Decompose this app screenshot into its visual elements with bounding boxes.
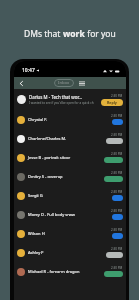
button[interactable]: Darius M - Tech that wor... bbox=[14, 89, 126, 110]
staticText: 2:30 PM bbox=[111, 247, 123, 251]
staticText: I wanted to see if you'd be open for a q… bbox=[29, 101, 94, 105]
button[interactable]: Wilson H bbox=[14, 224, 126, 243]
staticText: Wilson H bbox=[28, 231, 109, 236]
staticText: 2:30 PM bbox=[111, 209, 123, 213]
staticText: 10:47 bbox=[22, 67, 35, 74]
button[interactable]: Jesse B - portrait sitcor bbox=[14, 148, 126, 167]
staticText: Dmitry S - coverup bbox=[28, 174, 102, 179]
staticText: Chrystal F. bbox=[28, 117, 109, 122]
staticText: Sergii G bbox=[28, 193, 109, 198]
staticText: 2:30 PM bbox=[111, 171, 123, 175]
staticText: DMs that bbox=[24, 28, 63, 40]
staticText: for you bbox=[85, 28, 116, 40]
staticText: 2:30 PM bbox=[111, 133, 123, 137]
staticText: 2:30 PM bbox=[111, 190, 123, 194]
staticText: Michael R - forearm dragon bbox=[28, 269, 102, 274]
button[interactable]: Filter bbox=[78, 79, 86, 87]
staticText: 2:30 PM bbox=[111, 114, 123, 118]
staticText: work bbox=[63, 28, 85, 40]
staticText: Inbox bbox=[58, 80, 70, 86]
staticText: 2:30 PM bbox=[111, 152, 123, 156]
button[interactable]: Charlene/Charles M. bbox=[14, 129, 126, 148]
staticText: 2:30 PM bbox=[111, 228, 123, 232]
button[interactable]: Ashley F bbox=[14, 243, 126, 262]
button[interactable]: Sergii G bbox=[14, 186, 126, 205]
staticText: 2:30 PM bbox=[111, 266, 123, 270]
staticText: Darius M - Tech that wor... bbox=[29, 94, 83, 100]
button[interactable]: Michael R - forearm dragon bbox=[14, 262, 126, 281]
button[interactable]: Chrystal F. bbox=[14, 110, 126, 129]
button[interactable]: Inbox bbox=[54, 79, 74, 87]
staticText: Jesse B - portrait sitcor bbox=[28, 155, 102, 160]
button[interactable]: Morey D - Full body snaw bbox=[14, 205, 126, 224]
staticText: 2:30 PM bbox=[111, 94, 123, 98]
button[interactable]: Back bbox=[16, 78, 26, 88]
staticText: Charlene/Charles M. bbox=[28, 136, 104, 141]
staticText: Reply bbox=[107, 100, 117, 105]
button[interactable]: Dmitry S - coverup bbox=[14, 167, 126, 186]
button[interactable]: Reply bbox=[101, 99, 123, 106]
staticText: Morey D - Full body snaw bbox=[28, 212, 109, 217]
staticText: Ashley F bbox=[28, 250, 104, 255]
